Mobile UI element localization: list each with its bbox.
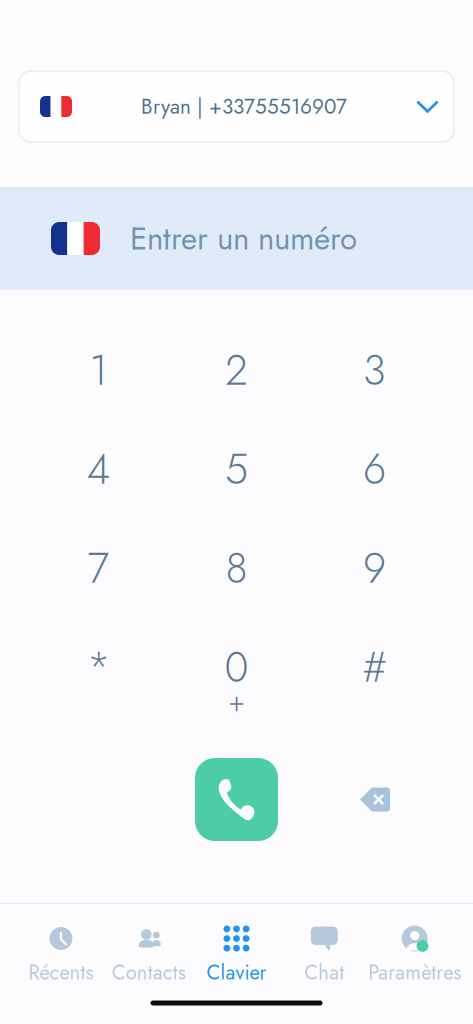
staticText: Contacts bbox=[112, 958, 186, 987]
staticText: + bbox=[228, 680, 245, 723]
staticText: Entrer un numéro bbox=[130, 216, 357, 261]
staticText: 7 bbox=[87, 539, 109, 598]
button[interactable]: 8 bbox=[167, 519, 305, 618]
button[interactable]: Bryan | +33755516907 bbox=[19, 71, 454, 142]
button[interactable]: 7 bbox=[29, 519, 167, 618]
staticText: 6 bbox=[363, 440, 386, 499]
button[interactable]: 5 bbox=[167, 420, 305, 519]
staticText: 5 bbox=[225, 440, 248, 499]
staticText: Clavier bbox=[206, 958, 266, 987]
staticText: Bryan | +33755516907 bbox=[141, 92, 347, 121]
button[interactable]: Appeler bbox=[195, 758, 278, 841]
staticText: 3 bbox=[363, 341, 386, 400]
staticText: Paramètres bbox=[368, 958, 461, 987]
button[interactable]: 3 bbox=[305, 321, 443, 420]
button[interactable]: Clavier bbox=[193, 927, 280, 985]
staticText: Chat bbox=[304, 958, 344, 987]
staticText: * bbox=[86, 638, 110, 697]
staticText: # bbox=[362, 638, 386, 697]
staticText: 0 bbox=[224, 638, 248, 697]
staticText: Récents bbox=[28, 958, 93, 987]
button[interactable]: 0 bbox=[167, 618, 305, 717]
button[interactable]: # bbox=[305, 618, 443, 717]
staticText: 9 bbox=[363, 539, 386, 598]
button[interactable]: Paramètres bbox=[368, 927, 456, 985]
button[interactable]: 4 bbox=[29, 420, 167, 519]
staticText: 1 bbox=[89, 341, 107, 400]
button[interactable]: * bbox=[29, 618, 167, 717]
staticText: 8 bbox=[225, 539, 247, 598]
button[interactable]: 2 bbox=[167, 321, 305, 420]
staticText: 4 bbox=[86, 440, 110, 499]
button[interactable]: Chat bbox=[280, 927, 368, 985]
button[interactable]: Contacts bbox=[105, 927, 193, 985]
button[interactable]: 1 bbox=[29, 321, 167, 420]
staticText: 2 bbox=[225, 341, 248, 400]
button[interactable]: Supprimer bbox=[344, 768, 406, 830]
button[interactable]: Récents bbox=[17, 927, 105, 985]
button[interactable]: 6 bbox=[305, 420, 443, 519]
button[interactable]: 9 bbox=[305, 519, 443, 618]
